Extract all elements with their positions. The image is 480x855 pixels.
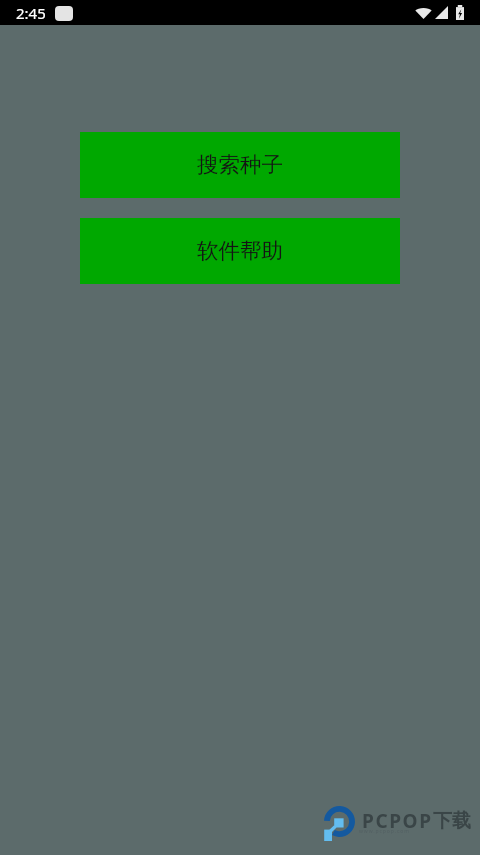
other: Mobile signal bbox=[435, 6, 448, 19]
button[interactable]: 搜索种子 bbox=[80, 132, 400, 198]
button[interactable]: 软件帮助 bbox=[80, 218, 400, 284]
staticText: PCPOP bbox=[362, 808, 433, 834]
staticText: 2:45 bbox=[16, 3, 46, 23]
other: Wi-Fi bbox=[415, 7, 432, 19]
staticText: 软件帮助 bbox=[197, 237, 283, 264]
other: Battery charging bbox=[456, 5, 464, 20]
staticText: 下载 bbox=[433, 809, 471, 833]
staticText: 搜索种子 bbox=[197, 151, 283, 178]
